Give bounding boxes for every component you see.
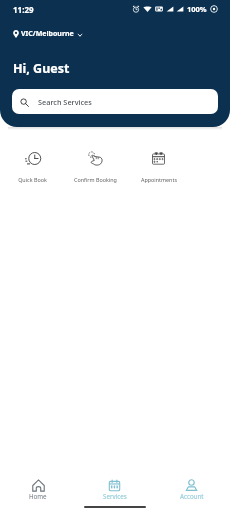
button[interactable]: Account xyxy=(153,470,230,500)
button[interactable]: Appointments xyxy=(127,151,190,187)
button[interactable]: Location xyxy=(13,29,83,39)
staticText: Quick Book xyxy=(18,176,47,183)
staticText: VIC/Melbourne xyxy=(21,29,74,39)
button[interactable]: Search Services xyxy=(12,89,218,114)
staticText: Account xyxy=(180,492,204,500)
staticText: Hi, Guest xyxy=(13,60,70,77)
staticText: Search Services xyxy=(38,97,92,107)
button[interactable]: Confirm Booking xyxy=(64,151,127,187)
staticText: Home xyxy=(29,492,47,500)
button[interactable]: Services xyxy=(76,470,153,500)
staticText: 11:29 xyxy=(13,4,34,15)
other: Location xyxy=(13,30,19,38)
staticText: Confirm Booking xyxy=(74,176,117,183)
button[interactable]: Quick Book xyxy=(1,151,64,187)
staticText: Services xyxy=(103,492,127,500)
button[interactable]: Home xyxy=(0,470,76,500)
staticText: 100% xyxy=(187,4,207,14)
staticText: Appointments xyxy=(141,176,177,183)
